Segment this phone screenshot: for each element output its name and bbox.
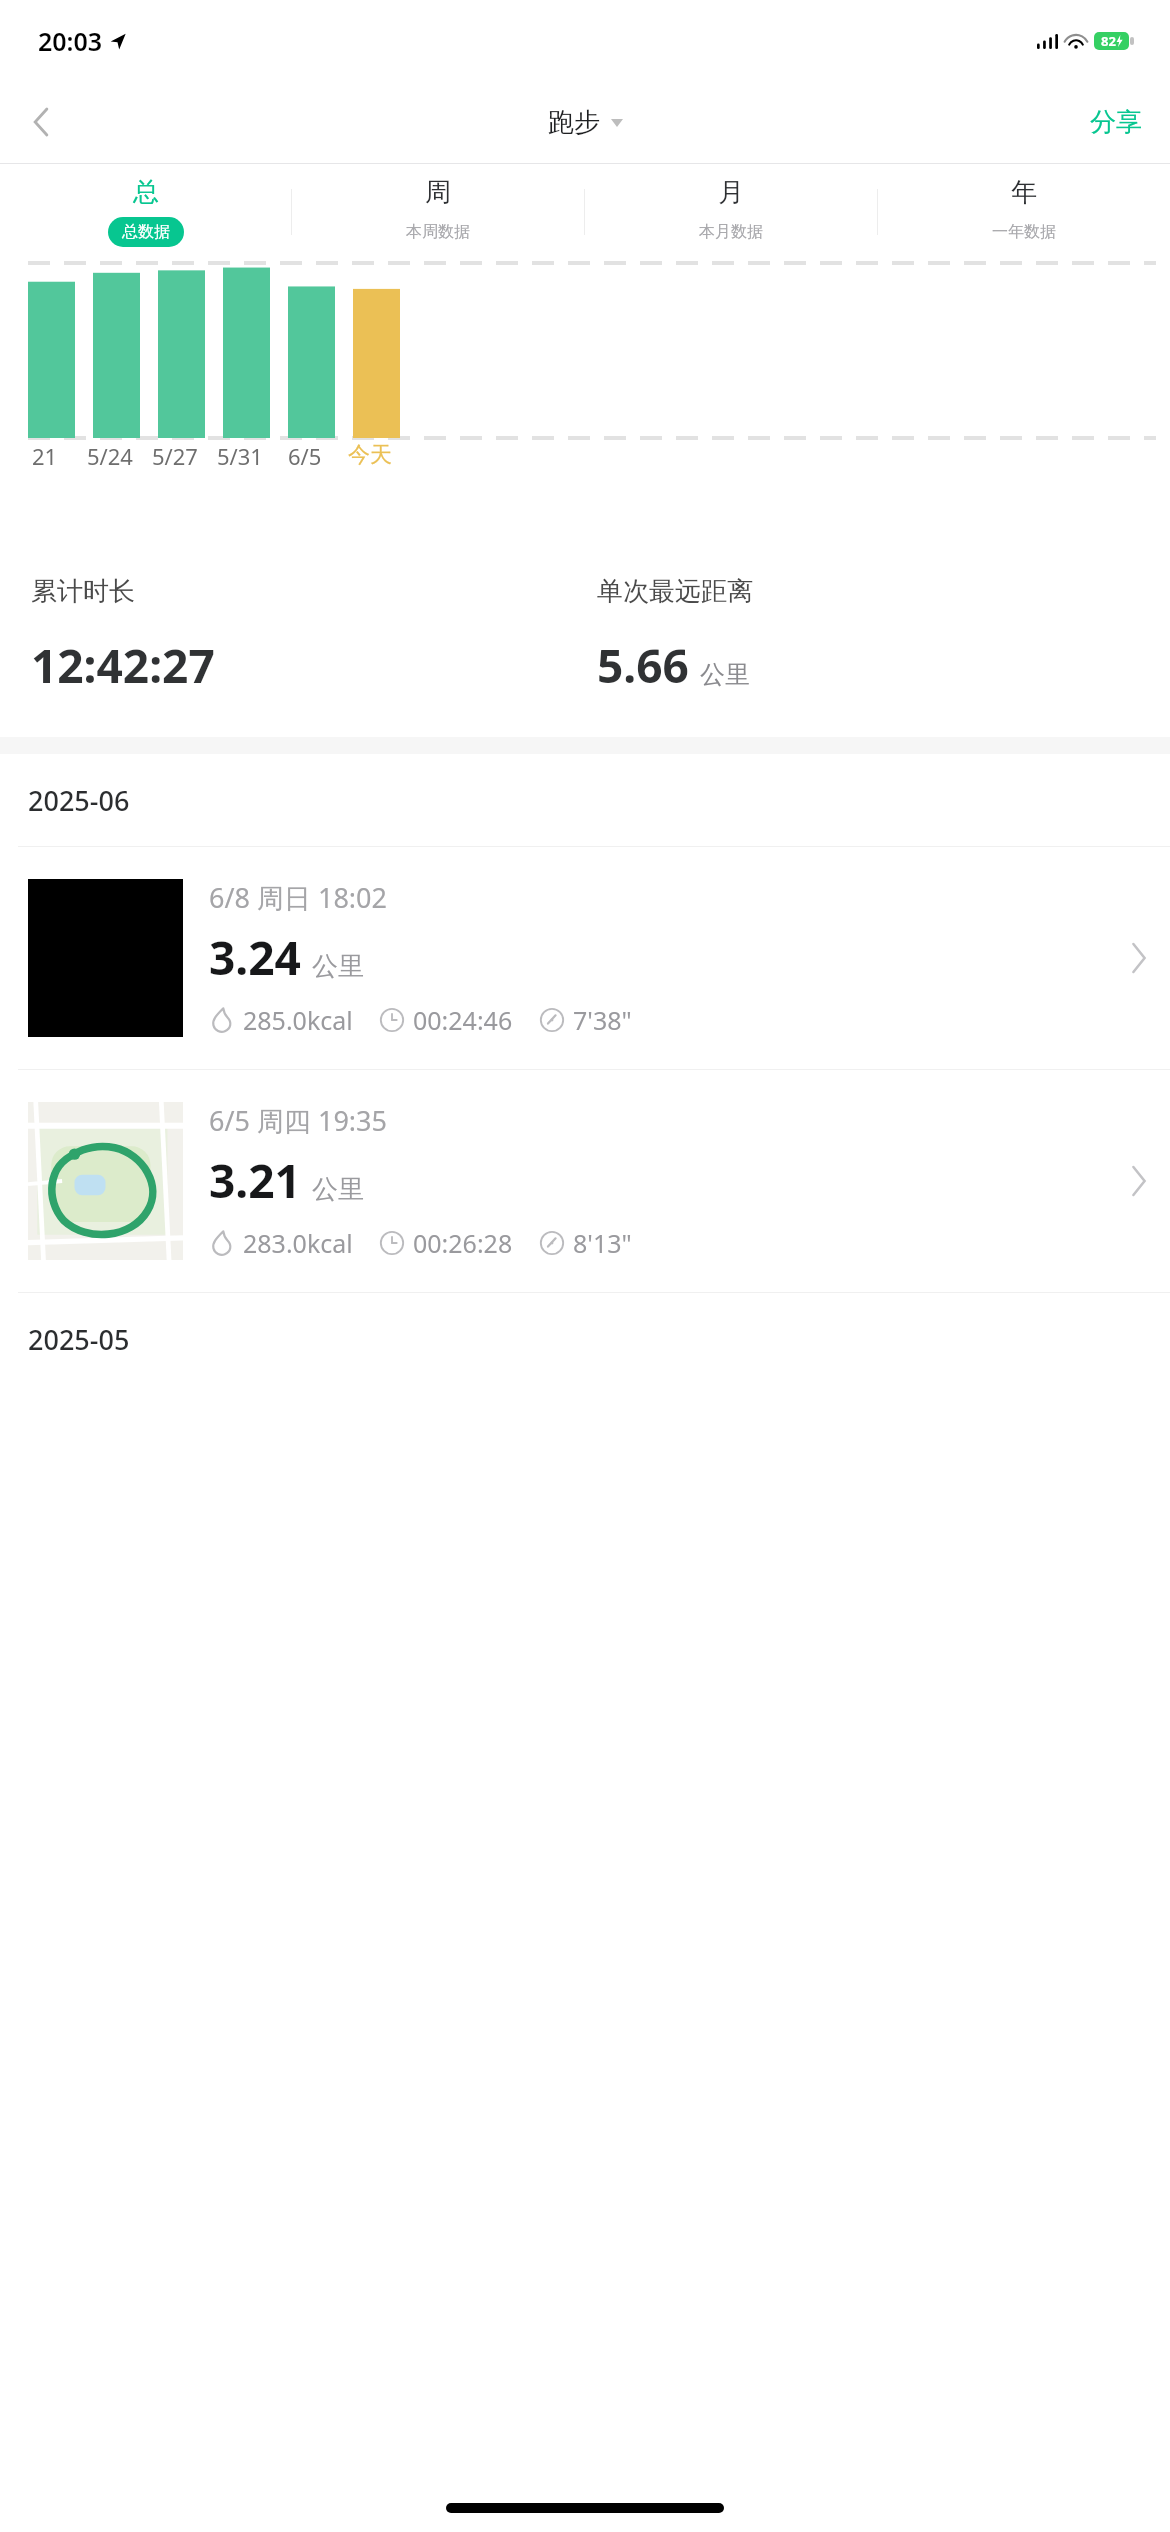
staticText: 2025-05 — [28, 1321, 130, 1358]
button[interactable]: 周 — [292, 164, 584, 259]
staticText: 283.0kcal — [243, 1226, 353, 1260]
button[interactable]: 总 — [0, 164, 291, 259]
staticText: 82 — [1101, 32, 1116, 50]
staticText: 7'38" — [573, 1003, 632, 1037]
button[interactable]: Back — [12, 93, 70, 151]
staticText: 公里 — [312, 950, 364, 983]
staticText: 月 — [718, 176, 744, 209]
staticText: 6/5 周四 19:35 — [209, 1102, 387, 1139]
staticText: 一年数据 — [992, 222, 1056, 242]
button[interactable]: 年 — [878, 164, 1170, 259]
staticText: 跑步 — [548, 106, 600, 139]
staticText: 6/5 — [288, 441, 322, 471]
staticText: 5/24 — [87, 441, 133, 471]
staticText: 总数据 — [122, 222, 170, 242]
staticText: 年 — [1011, 176, 1037, 209]
staticText: 5.66 — [597, 634, 689, 697]
staticText: 单次最远距离 — [597, 575, 753, 608]
button[interactable]: 6/5 周四 19:35 — [0, 1070, 1170, 1292]
staticText: 5/27 — [152, 441, 198, 471]
staticText: 本周数据 — [406, 222, 470, 242]
staticText: 6/8 周日 18:02 — [209, 879, 387, 916]
button[interactable]: 分享 — [1082, 98, 1150, 147]
staticText: 00:26:28 — [413, 1226, 513, 1260]
staticText: 8'13" — [573, 1226, 632, 1260]
staticText: 分享 — [1090, 106, 1142, 139]
staticText: 20:03 — [38, 24, 103, 58]
staticText: 今天 — [348, 441, 392, 469]
staticText: 累计时长 — [31, 575, 135, 608]
staticText: 00:24:46 — [413, 1003, 513, 1037]
staticText: 本月数据 — [699, 222, 763, 242]
staticText: 2025-06 — [28, 782, 130, 819]
staticText: 21 — [32, 441, 58, 471]
staticText: 公里 — [312, 1173, 364, 1206]
staticText: 公里 — [700, 659, 750, 690]
staticText: 285.0kcal — [243, 1003, 353, 1037]
staticText: 12:42:27 — [31, 634, 215, 697]
button[interactable]: 跑步 — [542, 100, 629, 145]
staticText: 5/31 — [217, 441, 263, 471]
staticText: 总 — [133, 176, 159, 209]
button[interactable]: 月 — [585, 164, 877, 259]
button[interactable]: 6/8 周日 18:02 — [0, 847, 1170, 1069]
staticText: 3.21 — [209, 1149, 301, 1212]
staticText: 周 — [425, 176, 451, 209]
staticText: 3.24 — [209, 926, 301, 989]
